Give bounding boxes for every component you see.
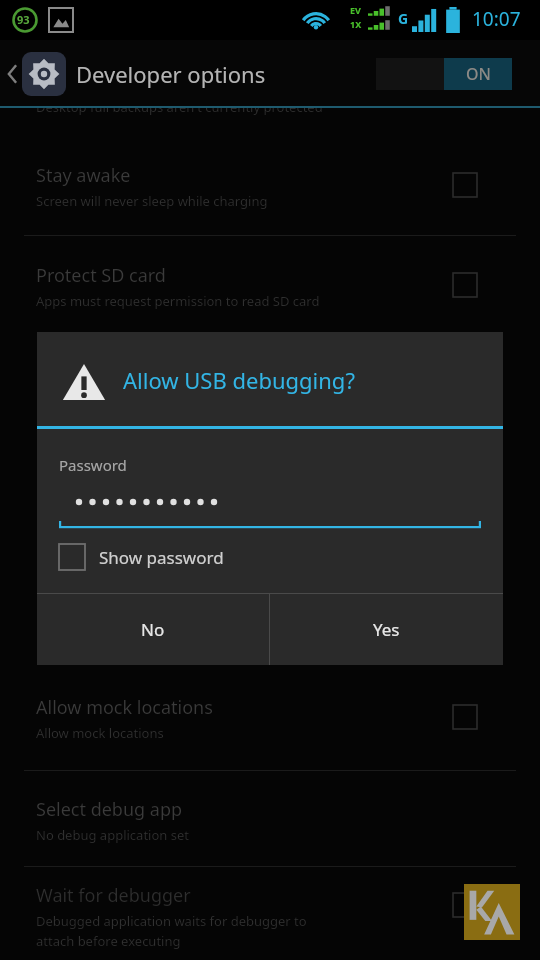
staticText: No debug application set	[36, 826, 189, 844]
staticText: ON	[466, 63, 491, 85]
button[interactable]: Yes	[270, 594, 503, 665]
staticText: Allow mock locations	[36, 695, 213, 720]
staticText: Screen will never sleep while charging	[36, 192, 268, 210]
button[interactable]: Select debug app	[0, 789, 540, 859]
button[interactable]: Stay awake	[0, 155, 540, 225]
staticText: Stay awake	[36, 163, 131, 188]
staticText: Allow mock locations	[36, 724, 164, 742]
button[interactable]: Allow mock locations	[453, 705, 477, 729]
staticText: Allow USB debugging?	[123, 365, 355, 395]
staticText: 1X	[350, 18, 362, 30]
staticText: Developer options	[76, 59, 266, 89]
staticText: EV	[350, 4, 361, 16]
button[interactable]: Wait for debugger	[453, 893, 477, 917]
staticText: Wait for debugger	[36, 883, 191, 908]
button[interactable]: Wait for debugger	[0, 875, 540, 957]
staticText: 93	[17, 12, 30, 27]
button[interactable]: Allow mock locations	[0, 687, 540, 757]
staticText: attach before executing	[36, 932, 181, 950]
button[interactable]: Back	[0, 54, 26, 94]
button[interactable]: Stay awake	[453, 173, 477, 197]
button[interactable]: Protect SD card	[453, 273, 477, 297]
staticText: Desktop full backups aren't currently pr…	[36, 98, 323, 116]
staticText: Select debug app	[36, 797, 183, 822]
button[interactable]: No	[37, 594, 269, 665]
staticText: Show password	[99, 546, 224, 569]
button[interactable]: ON	[376, 58, 512, 90]
staticText: Debugged application waits for debugger …	[36, 912, 307, 930]
button[interactable]: Protect SD card	[0, 255, 540, 325]
staticText: G	[398, 9, 409, 28]
staticText: Protect SD card	[36, 263, 166, 288]
staticText: 10:07	[472, 6, 521, 32]
staticText: No	[141, 618, 165, 641]
button[interactable]: Show password	[59, 540, 224, 574]
staticText: Password	[59, 455, 127, 475]
staticText: Yes	[373, 618, 400, 641]
staticText: Apps must request permission to read SD …	[36, 292, 320, 310]
